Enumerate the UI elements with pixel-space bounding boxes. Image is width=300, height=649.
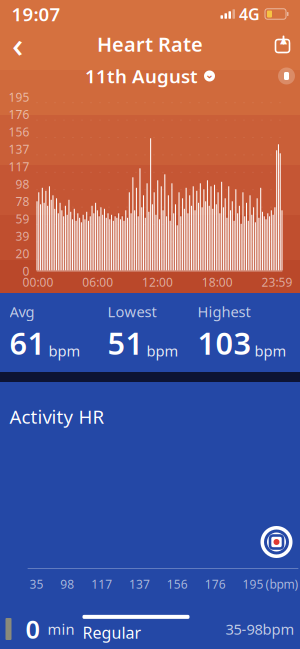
staticText: 156 bbox=[167, 576, 188, 592]
button[interactable]: Back bbox=[0, 29, 39, 59]
staticText: ‹ bbox=[12, 21, 23, 67]
staticText: Activity HR bbox=[9, 404, 104, 429]
staticText: 00:00 bbox=[22, 274, 53, 290]
staticText: 11th August bbox=[85, 64, 198, 88]
staticText: 156 bbox=[8, 124, 29, 140]
staticText: 137 bbox=[129, 576, 150, 592]
staticText: bpm bbox=[254, 341, 286, 361]
staticText: Highest bbox=[197, 302, 250, 321]
staticText: 103 bbox=[197, 322, 251, 363]
staticText: 06:00 bbox=[82, 274, 113, 290]
staticText: 4G bbox=[239, 3, 260, 25]
staticText: 117 bbox=[8, 159, 29, 174]
staticText: bpm bbox=[48, 341, 80, 361]
staticText: 35 bbox=[29, 576, 43, 592]
staticText: 176 bbox=[8, 106, 29, 122]
staticText: Heart Rate bbox=[97, 31, 203, 57]
staticText: 78 bbox=[15, 193, 29, 209]
staticText: 61 bbox=[9, 322, 45, 363]
staticText: 18:00 bbox=[202, 274, 233, 290]
staticText: 23:59 bbox=[261, 274, 292, 290]
staticText: 59 bbox=[15, 211, 29, 227]
staticText: 195 bbox=[8, 89, 29, 105]
staticText: (bpm) bbox=[265, 576, 298, 592]
button[interactable]: Device battery bbox=[271, 64, 300, 88]
staticText: Regular bbox=[82, 622, 141, 643]
staticText: 19:07 bbox=[11, 2, 60, 26]
button[interactable]: Share bbox=[260, 29, 300, 59]
button[interactable]: 0 bbox=[0, 609, 300, 649]
staticText: min bbox=[47, 619, 74, 639]
staticText: 195 bbox=[242, 576, 263, 592]
staticText: 12:00 bbox=[142, 274, 173, 290]
staticText: 51 bbox=[107, 322, 143, 363]
staticText: 39 bbox=[15, 228, 29, 244]
staticText: 35-98bpm bbox=[225, 619, 294, 639]
staticText: 176 bbox=[205, 576, 226, 592]
staticText: 0 bbox=[25, 612, 39, 646]
staticText: Avg bbox=[9, 302, 34, 321]
staticText: Lowest bbox=[107, 302, 156, 321]
staticText: 98 bbox=[60, 576, 74, 592]
staticText: ⌄ bbox=[205, 68, 214, 80]
staticText: 20 bbox=[15, 246, 29, 261]
staticText: ▲ bbox=[280, 35, 287, 45]
staticText: 137 bbox=[8, 141, 29, 157]
staticText: 117 bbox=[91, 576, 112, 592]
staticText: 98 bbox=[15, 176, 29, 192]
button[interactable]: 11th August bbox=[77, 61, 223, 91]
staticText: bpm bbox=[146, 341, 178, 361]
staticText: 0 bbox=[22, 263, 29, 279]
